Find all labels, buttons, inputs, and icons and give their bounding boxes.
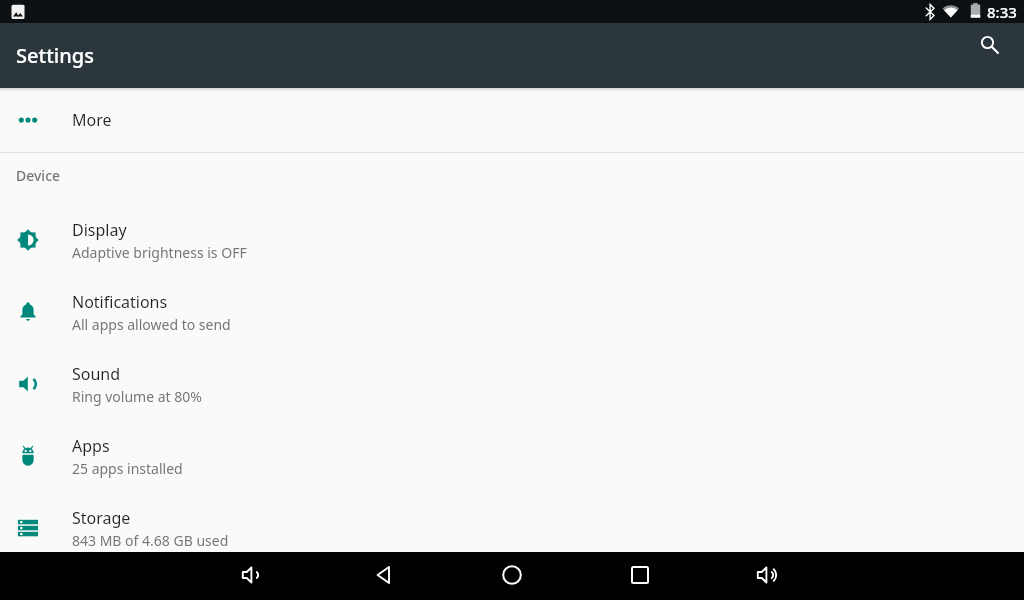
- staticText: Sound: [72, 363, 121, 385]
- button[interactable]: Notifications: [0, 276, 1024, 348]
- staticText: Device: [16, 166, 61, 185]
- button[interactable]: [616, 552, 664, 600]
- staticText: Notifications: [72, 291, 168, 313]
- button[interactable]: [971, 26, 1007, 62]
- staticText: All apps allowed to send: [72, 315, 231, 334]
- button[interactable]: More: [0, 88, 1024, 152]
- button[interactable]: [488, 552, 536, 600]
- staticText: 25 apps installed: [72, 459, 183, 478]
- staticText: More: [72, 109, 112, 131]
- button[interactable]: [228, 552, 276, 600]
- staticText: 8:33: [987, 2, 1017, 22]
- staticText: Settings: [16, 42, 94, 69]
- staticText: Ring volume at 80%: [72, 387, 202, 406]
- staticText: Storage: [72, 507, 131, 529]
- button[interactable]: Display: [0, 204, 1024, 276]
- staticText: 843 MB of 4.68 GB used: [72, 531, 229, 550]
- staticText: Adaptive brightness is OFF: [72, 243, 247, 262]
- button[interactable]: Apps: [0, 420, 1024, 492]
- button[interactable]: Sound: [0, 348, 1024, 420]
- button[interactable]: [743, 552, 791, 600]
- button[interactable]: [360, 552, 408, 600]
- staticText: Display: [72, 219, 127, 241]
- button[interactable]: Storage: [0, 492, 1024, 552]
- staticText: Apps: [72, 435, 110, 457]
